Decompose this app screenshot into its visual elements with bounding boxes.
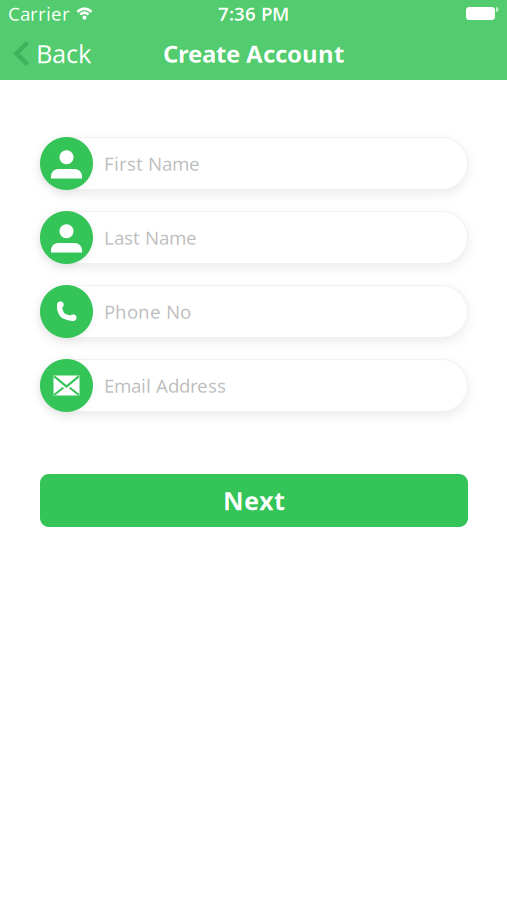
button[interactable]: Last Name [40,211,468,264]
staticText: 7:36 PM [218,1,289,26]
staticText: Next [223,484,285,517]
button[interactable]: Next [40,474,468,527]
button[interactable]: First Name [40,137,468,190]
button[interactable]: Back [12,37,92,70]
staticText: Phone No [104,299,191,324]
staticText: Back [36,37,92,70]
staticText: Carrier [8,1,70,26]
staticText: First Name [104,151,200,176]
staticText: Create Account [163,38,344,69]
button[interactable]: Email Address [40,359,468,412]
staticText: Email Address [104,373,226,398]
staticText: Last Name [104,225,197,250]
button[interactable]: Phone No [40,285,468,338]
